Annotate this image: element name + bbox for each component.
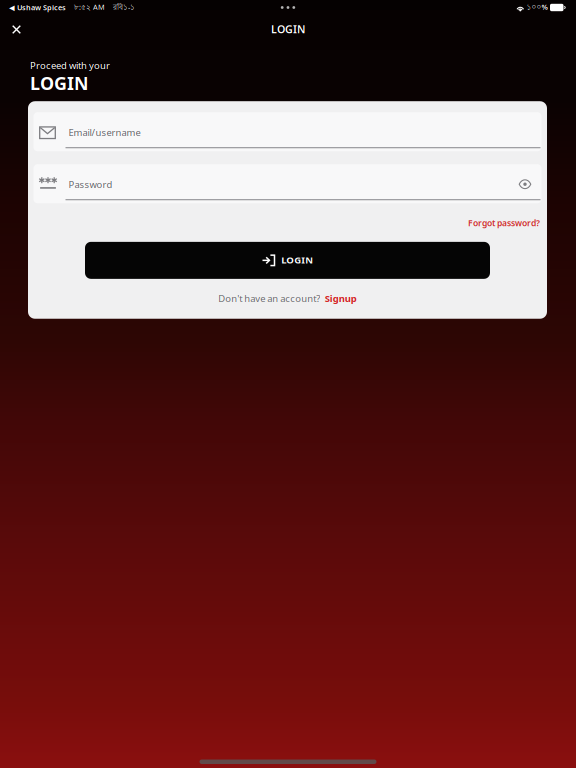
staticText: Proceed with your [30, 59, 110, 72]
staticText: Don't have an account? [218, 292, 320, 305]
staticText: LOGIN [281, 253, 313, 266]
staticText: ১০০% [526, 2, 547, 13]
staticText: Signup [325, 292, 357, 305]
staticText: Forgot password? [468, 217, 540, 229]
button[interactable]: Signup [325, 292, 357, 305]
staticText: LOGIN [30, 71, 89, 95]
button[interactable]: LOGIN [85, 242, 490, 279]
button[interactable]: Show password [518, 179, 540, 189]
button[interactable]: Forgot password? [468, 217, 540, 229]
staticText: ৮:৫২ AM রবি১-১ [66, 2, 135, 13]
staticText: Email/username [68, 126, 140, 139]
staticText: ◀ Ushaw Spices [9, 2, 66, 12]
staticText: LOGIN [271, 22, 305, 36]
staticText: Password [68, 178, 112, 191]
button[interactable]: Close [0, 14, 33, 42]
